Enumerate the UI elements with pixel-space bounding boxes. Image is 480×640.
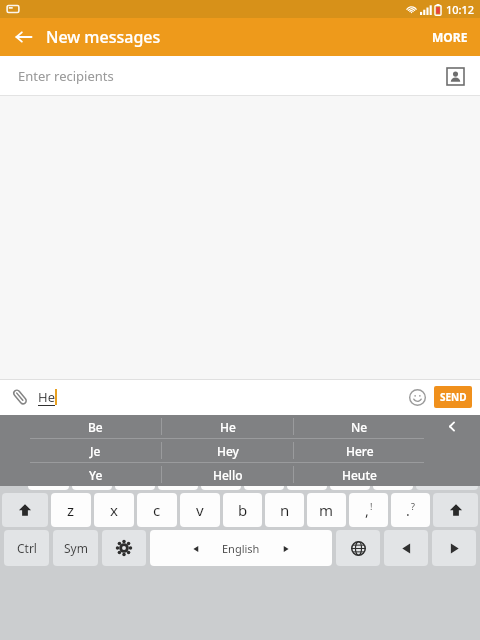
button[interactable]: Space, English (150, 530, 332, 566)
staticText: English (222, 541, 260, 556)
button[interactable]: Here (294, 439, 425, 462)
staticText: He (220, 419, 236, 435)
button[interactable]: m (307, 493, 346, 527)
button[interactable]: Ne (294, 415, 425, 438)
button[interactable]: Je (30, 439, 161, 462)
staticText: x (110, 500, 118, 520)
button[interactable]: z (51, 493, 91, 527)
staticText: Ye (89, 467, 103, 483)
button[interactable]: Collapse suggestions (425, 415, 480, 438)
button[interactable] (416, 456, 478, 490)
button[interactable] (437, 419, 478, 453)
staticText: Be (88, 419, 103, 435)
button[interactable]: u (261, 419, 302, 453)
button[interactable]: s (72, 456, 112, 490)
staticText: Here (346, 443, 374, 459)
button[interactable]: a (28, 456, 69, 490)
button[interactable]: Emoji (404, 384, 430, 410)
staticText: g (216, 463, 226, 483)
button[interactable]: x (94, 493, 134, 527)
staticText: , (365, 501, 369, 520)
staticText: He (38, 388, 55, 406)
staticText: . (406, 501, 410, 520)
button[interactable]: j (287, 456, 327, 490)
staticText: o (365, 426, 375, 446)
button[interactable]: MORE (420, 18, 480, 56)
staticText: e (104, 426, 113, 446)
staticText: MORE (432, 29, 468, 45)
button[interactable]: Add contact (442, 63, 468, 89)
staticText: Heute (342, 467, 377, 483)
staticText: t (191, 426, 197, 446)
button[interactable]: Back (10, 23, 38, 51)
staticText: Hey (217, 443, 239, 459)
button[interactable]: Sym (53, 530, 98, 566)
staticText: p (409, 426, 419, 446)
button[interactable]: Cursor left (384, 530, 428, 566)
button[interactable]: Hello (162, 463, 293, 486)
staticText: SEND (440, 390, 467, 404)
staticText: r (148, 426, 155, 446)
button[interactable]: y (217, 419, 258, 453)
button[interactable]: v (180, 493, 220, 527)
staticText: 10:12 (446, 2, 475, 17)
button[interactable]: Heute (294, 463, 425, 486)
button[interactable]: Change language (336, 530, 380, 566)
staticText: m (319, 500, 334, 520)
button[interactable]: n (265, 493, 304, 527)
button[interactable]: p (393, 419, 434, 453)
button[interactable]: h (244, 456, 284, 490)
button[interactable]: Be (30, 415, 161, 438)
button[interactable]: w (45, 419, 85, 453)
staticText: Je (90, 443, 101, 459)
button[interactable]: . (391, 493, 430, 527)
staticText: n (280, 500, 290, 520)
button[interactable]: He (162, 415, 293, 438)
staticText: b (238, 500, 248, 520)
button[interactable]: d (115, 456, 155, 490)
button[interactable]: i (305, 419, 346, 453)
staticText: New messages (46, 26, 161, 48)
button[interactable]: Attach (6, 383, 34, 411)
button[interactable]: b (223, 493, 262, 527)
button[interactable]: c (137, 493, 177, 527)
button[interactable]: e (88, 419, 128, 453)
button[interactable]: t (174, 419, 214, 453)
staticText: s (88, 463, 96, 483)
button[interactable]: r (131, 419, 171, 453)
staticText: y (234, 426, 242, 446)
staticText: w (59, 426, 71, 446)
button[interactable]: SEND (434, 386, 472, 408)
button[interactable] (2, 493, 48, 527)
button[interactable] (433, 493, 478, 527)
button[interactable]: Ye (30, 463, 161, 486)
staticText: Ne (351, 419, 368, 435)
staticText: z (67, 500, 75, 520)
button[interactable]: k (330, 456, 370, 490)
staticText: u (277, 426, 287, 446)
staticText: v (196, 500, 204, 520)
staticText: Hello (213, 467, 243, 483)
button[interactable]: Settings (102, 530, 146, 566)
staticText: Sym (64, 540, 88, 556)
staticText: Ctrl (17, 540, 37, 556)
button[interactable]: l (373, 456, 413, 490)
button[interactable]: Ctrl (4, 530, 49, 566)
button[interactable]: , (349, 493, 388, 527)
button[interactable]: g (201, 456, 241, 490)
button[interactable]: o (349, 419, 390, 453)
button[interactable]: f (158, 456, 198, 490)
button[interactable]: Hey (162, 439, 293, 462)
staticText: ? (411, 500, 415, 512)
button[interactable]: Cursor right (432, 530, 476, 566)
